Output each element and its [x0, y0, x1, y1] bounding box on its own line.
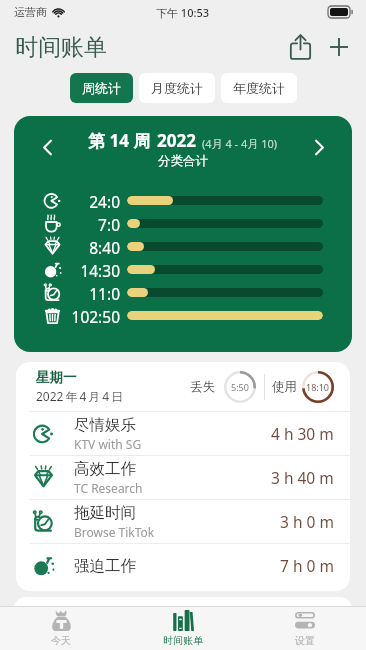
staticText: 102:50: [71, 306, 120, 325]
staticText: 今天: [51, 634, 71, 647]
button[interactable]: Previous week: [32, 132, 62, 162]
staticText: 尽情娱乐: [74, 415, 136, 435]
button[interactable]: 周统计: [70, 73, 133, 103]
staticText: 2022: [157, 129, 196, 152]
staticText: 运营商: [14, 5, 47, 19]
staticText: 8:40: [89, 237, 120, 256]
staticText: 7 h 0 m: [280, 555, 334, 576]
staticText: 第 14 周: [88, 129, 151, 152]
button[interactable]: 高效工作: [16, 456, 350, 499]
staticText: 11:0: [89, 283, 120, 302]
staticText: 3 h 0 m: [280, 511, 334, 532]
button[interactable]: 设置: [244, 607, 366, 650]
staticText: 2022 年 4 月 4 日: [36, 388, 124, 404]
button[interactable]: 月度统计: [139, 73, 215, 103]
staticText: TC Research: [74, 480, 143, 496]
staticText: 拖延时间: [74, 503, 136, 523]
button[interactable]: 强迫工作: [16, 544, 350, 587]
staticText: 使用: [272, 379, 297, 395]
button[interactable]: 今天: [0, 607, 122, 650]
staticText: 14:30: [80, 260, 120, 279]
button[interactable]: 年度统计: [221, 73, 297, 103]
staticText: 设置: [295, 634, 315, 647]
staticText: 时间账单: [15, 33, 107, 62]
staticText: 3 h 40 m: [271, 467, 334, 488]
staticText: KTV with SG: [74, 436, 142, 452]
staticText: 18:10: [306, 381, 330, 393]
button[interactable]: 拖延时间: [16, 500, 350, 543]
staticText: 7:0: [98, 214, 120, 233]
staticText: Browse TikTok: [74, 524, 155, 540]
button[interactable]: Add: [320, 28, 358, 66]
staticText: 年度统计: [233, 80, 285, 96]
staticText: (4月 4 - 4月 10): [202, 136, 278, 151]
staticText: 4 h 30 m: [271, 423, 334, 444]
staticText: 高效工作: [74, 459, 136, 479]
staticText: 丢失: [190, 379, 215, 395]
staticText: 5:50: [231, 381, 249, 393]
staticText: 下午 10:53: [156, 5, 210, 20]
button[interactable]: 尽情娱乐: [16, 412, 350, 455]
staticText: 月度统计: [151, 80, 203, 96]
staticText: 时间账单: [163, 634, 203, 647]
button[interactable]: Share: [281, 28, 319, 66]
staticText: 24:0: [89, 191, 120, 210]
staticText: 分类合计: [158, 153, 208, 169]
staticText: 星期一: [36, 369, 77, 386]
staticText: 周统计: [82, 80, 121, 96]
button[interactable]: 时间账单: [122, 607, 244, 650]
staticText: 强迫工作: [74, 556, 136, 576]
button[interactable]: Next week: [304, 132, 334, 162]
